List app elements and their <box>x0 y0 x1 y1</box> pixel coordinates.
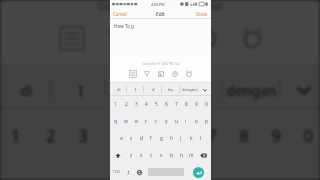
button[interactable]: 0 <box>201 96 211 113</box>
button[interactable]: 8 <box>181 96 191 113</box>
button[interactable]: c <box>146 147 156 164</box>
button[interactable]: 4 <box>141 96 151 113</box>
button[interactable]: 0 <box>291 109 320 164</box>
button[interactable]: z <box>126 147 136 164</box>
staticText: x <box>140 152 143 159</box>
button[interactable]: Voice recording <box>171 70 179 78</box>
staticText: 2 <box>125 101 128 108</box>
button[interactable]: 9 <box>191 96 201 113</box>
button[interactable]: itu <box>162 83 180 96</box>
button[interactable]: Set reminder <box>185 70 193 78</box>
button[interactable]: 1 <box>110 96 121 113</box>
button[interactable]: a <box>116 130 126 147</box>
button[interactable]: t <box>151 113 161 130</box>
button[interactable]: 6 <box>161 96 171 113</box>
button[interactable]: 7 <box>194 109 226 164</box>
button[interactable]: s <box>126 130 136 147</box>
button[interactable]: u <box>171 113 181 130</box>
staticText: 8 <box>239 125 249 148</box>
button[interactable]: 1 <box>0 109 33 164</box>
button[interactable]: f <box>146 130 156 147</box>
button[interactable]: 4 <box>98 109 130 164</box>
staticText: c <box>150 152 153 159</box>
button[interactable]: p <box>201 113 211 130</box>
staticText: I <box>78 80 85 100</box>
button[interactable]: Draw <box>104 26 130 51</box>
button[interactable]: d <box>107 67 165 109</box>
button[interactable]: dengan <box>223 67 281 109</box>
button[interactable]: r <box>141 113 151 130</box>
button[interactable]: Enter <box>193 167 204 178</box>
button[interactable]: Done <box>196 9 208 19</box>
button[interactable]: dengan <box>180 83 198 96</box>
button[interactable]: Backspace <box>196 147 211 164</box>
button[interactable]: q <box>110 113 121 130</box>
button[interactable]: Shift <box>110 147 126 164</box>
button[interactable]: y <box>161 113 171 130</box>
button[interactable]: Voice recording <box>194 26 220 51</box>
button[interactable]: t <box>130 164 162 180</box>
button[interactable]: 2 <box>33 109 65 164</box>
button[interactable]: n <box>176 147 186 164</box>
button[interactable]: Checklist <box>129 70 137 78</box>
button[interactable]: q <box>0 164 33 180</box>
button[interactable]: More suggestions <box>281 67 320 109</box>
button[interactable]: h <box>166 130 176 147</box>
staticText: n <box>180 152 183 159</box>
button[interactable]: 2 <box>121 96 131 113</box>
staticText: dengan <box>182 87 197 93</box>
staticText: z <box>130 152 133 159</box>
button[interactable]: More suggestions <box>198 83 211 96</box>
button[interactable]: l <box>196 130 206 147</box>
button[interactable]: w <box>33 164 65 180</box>
button[interactable]: k <box>186 130 196 147</box>
button[interactable]: y <box>162 164 194 180</box>
button[interactable]: g <box>156 130 166 147</box>
staticText: t <box>155 118 157 125</box>
staticText: Edit <box>156 11 165 18</box>
button[interactable]: i <box>226 164 259 180</box>
button[interactable]: 5 <box>151 96 161 113</box>
button[interactable]: r <box>98 164 130 180</box>
staticText: itu <box>185 80 204 100</box>
button[interactable] <box>123 164 133 180</box>
button[interactable]: 3 <box>65 109 98 164</box>
button[interactable]: o <box>191 113 201 130</box>
button[interactable]: e <box>131 113 141 130</box>
button[interactable]: b <box>166 147 176 164</box>
button[interactable]: Insert image <box>157 70 165 78</box>
button[interactable]: 7 <box>171 96 181 113</box>
button[interactable]: x <box>136 147 146 164</box>
button[interactable]: Cancel <box>113 9 127 19</box>
button[interactable]: 8 <box>226 109 259 164</box>
button[interactable]: i <box>181 113 191 130</box>
button[interactable]: o <box>259 164 291 180</box>
button[interactable]: m <box>186 147 196 164</box>
button[interactable]: d <box>136 130 146 147</box>
button[interactable]: ?123 <box>110 164 123 180</box>
button[interactable]: I <box>127 83 144 96</box>
button[interactable]: d <box>144 83 162 96</box>
button[interactable]: e <box>65 164 98 180</box>
button[interactable]: di <box>110 83 127 96</box>
button[interactable]: p <box>291 164 320 180</box>
staticText: di <box>117 87 121 93</box>
button[interactable]: Change language <box>133 164 146 180</box>
button[interactable]: di <box>0 67 53 109</box>
button[interactable]: 5 <box>130 109 162 164</box>
button[interactable]: u <box>194 164 226 180</box>
staticText: 6 <box>165 101 168 108</box>
button[interactable]: v <box>156 147 166 164</box>
button[interactable]: Set reminder <box>239 26 265 51</box>
button[interactable]: j <box>176 130 186 147</box>
button[interactable]: 3 <box>131 96 141 113</box>
button[interactable]: 6 <box>162 109 194 164</box>
button[interactable]: w <box>121 113 131 130</box>
button[interactable]: Draw <box>143 70 151 78</box>
button[interactable]: itu <box>165 67 223 109</box>
button[interactable]: 9 <box>259 109 291 164</box>
